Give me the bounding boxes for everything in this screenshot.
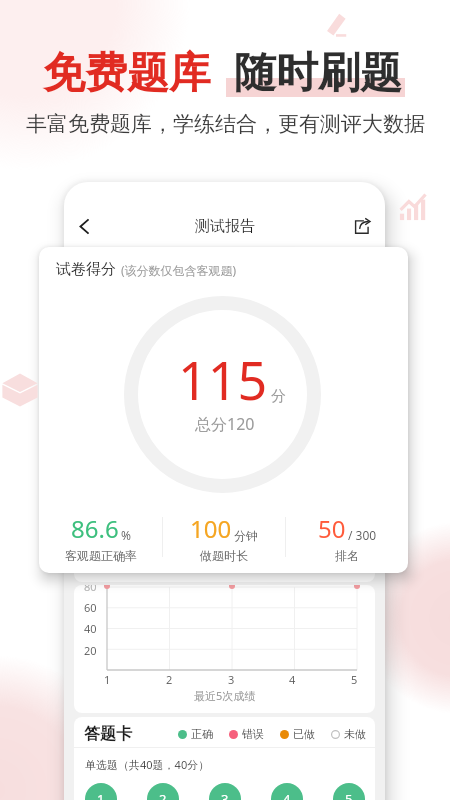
staticText: 80 (84, 585, 97, 594)
staticText: 分 (271, 387, 286, 406)
staticText: 正确 (191, 727, 213, 741)
staticText: 测试报告 (195, 217, 255, 236)
staticText: 试卷得分 (56, 260, 116, 279)
staticText: 5 (345, 790, 353, 800)
button[interactable]: Back (70, 212, 98, 240)
staticText: 2 (166, 672, 173, 687)
staticText: / 300 (348, 527, 377, 543)
staticText: 86.6 (71, 512, 119, 545)
button[interactable]: Share (348, 212, 376, 240)
staticText: 100 (190, 512, 232, 545)
staticText: 3 (221, 790, 229, 800)
button[interactable]: 2 (147, 783, 179, 800)
staticText: 分钟 (234, 528, 258, 543)
staticText: 20 (84, 643, 97, 658)
staticText: 5 (351, 672, 358, 687)
staticText: 丰富免费题库，学练结合，更有测评大数据 (26, 111, 425, 137)
staticText: 客观题正确率 (65, 548, 137, 563)
staticText: 50 (318, 512, 346, 545)
staticText: 排名 (335, 548, 359, 563)
staticText: 115 (178, 344, 268, 415)
staticText: 2 (159, 790, 167, 800)
staticText: 4 (283, 790, 291, 800)
staticText: 单选题（共40题，40分） (85, 757, 210, 772)
button[interactable]: 1 (85, 783, 117, 800)
staticText: % (121, 527, 131, 543)
staticText: 4 (289, 672, 296, 687)
staticText: 1 (97, 790, 105, 800)
staticText: 客观题正确率 (92, 559, 158, 573)
staticText: 做题时长 (203, 559, 247, 573)
staticText: 3 (228, 672, 235, 687)
staticText: 最近5次成绩 (194, 688, 256, 703)
staticText: 随时刷题 (234, 47, 402, 100)
staticText: 1 (104, 672, 111, 687)
button[interactable]: 5 (333, 783, 365, 800)
button[interactable]: 3 (209, 783, 241, 800)
staticText: 40 (84, 621, 97, 636)
staticText: 错误 (242, 727, 264, 741)
staticText: 答题卡 (84, 724, 132, 744)
button[interactable]: 4 (271, 783, 303, 800)
staticText: 做题时长 (200, 548, 248, 563)
staticText: 60 (84, 600, 97, 615)
staticText: 总分120 (195, 413, 255, 435)
staticText: 已做 (293, 727, 315, 741)
staticText: 未做 (344, 727, 366, 741)
staticText: (该分数仅包含客观题) (121, 262, 237, 278)
staticText: 免费题库 (43, 47, 211, 100)
